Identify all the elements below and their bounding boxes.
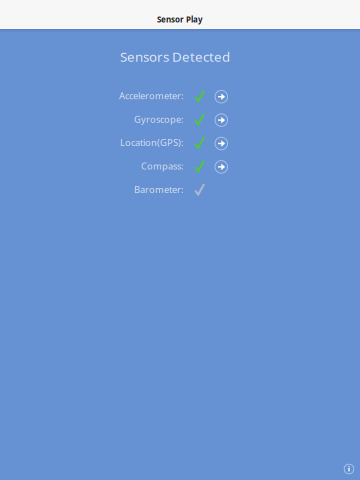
button[interactable]: Open Accelerometer xyxy=(214,84,227,107)
staticText: Location(GPS): xyxy=(120,136,184,149)
button[interactable]: Open Gyroscope xyxy=(214,107,227,131)
staticText: Barometer: xyxy=(134,183,184,195)
button[interactable]: Info xyxy=(338,458,360,480)
staticText: Sensor Play xyxy=(157,14,203,25)
staticText: Accelerometer: xyxy=(119,89,184,102)
staticText: Sensors Detected xyxy=(120,48,230,65)
button[interactable]: Open Compass xyxy=(214,154,227,178)
button[interactable]: Open Location(GPS) xyxy=(214,131,227,154)
staticText: Compass: xyxy=(141,160,184,172)
staticText: Gyroscope: xyxy=(134,113,184,125)
